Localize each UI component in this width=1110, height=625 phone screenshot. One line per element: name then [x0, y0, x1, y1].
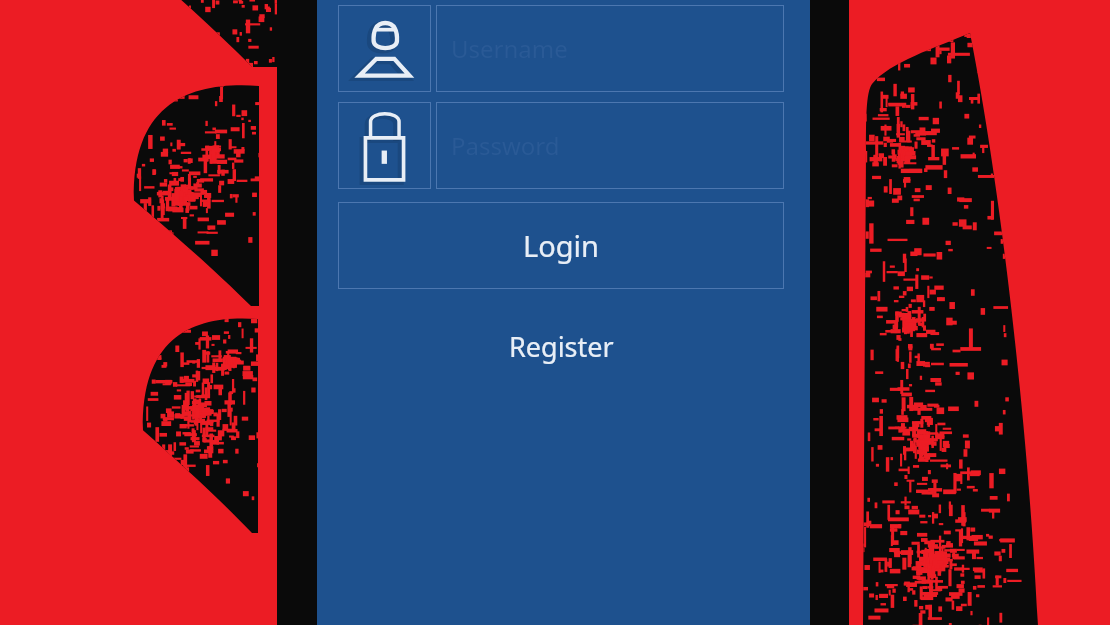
- staticText: Password: [451, 129, 560, 162]
- button[interactable]: Username: [436, 5, 784, 92]
- button[interactable]: Register: [338, 316, 784, 376]
- staticText: Login: [523, 226, 599, 265]
- staticText: Register: [509, 328, 614, 365]
- staticText: Username: [451, 32, 568, 65]
- button[interactable]: Login: [338, 202, 784, 289]
- button[interactable]: Password: [338, 102, 431, 189]
- button[interactable]: Username: [338, 5, 431, 92]
- button[interactable]: Password: [436, 102, 784, 189]
